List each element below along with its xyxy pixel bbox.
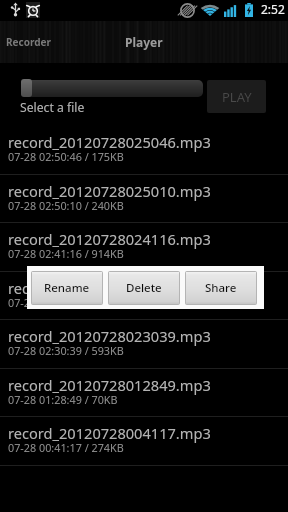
staticText: 2:52 [261,1,285,17]
staticText: 07-28 02:50:46 / 175KB [8,149,124,164]
staticText: Select a file [20,99,85,116]
button[interactable]: Player [84,21,204,63]
button[interactable]: Recorder [0,21,57,63]
staticText: record_20120728004117.mp3 [8,423,211,443]
button[interactable]: record_20120728004117.mp3 [0,417,288,466]
button[interactable]: Seek [21,79,32,97]
button[interactable]: record_20120728012849.mp3 [0,369,288,418]
staticText: 07-28 02:41:16 / 914KB [8,246,124,261]
button[interactable]: record_20120728023905.mp3 [0,272,288,321]
staticText: record_20120728025046.mp3 [8,132,211,152]
staticText: record_20120728024116.mp3 [8,229,211,249]
staticText: 07-28 00:41:17 / 274KB [8,440,124,455]
button[interactable]: Share [186,272,256,304]
button[interactable]: PLAY [207,80,266,113]
button[interactable]: Rename [32,272,102,304]
staticText: Recorder [6,35,51,49]
staticText: Delete [126,280,162,296]
staticText: record_20120728025010.mp3 [8,181,211,201]
button[interactable]: record_20120728025046.mp3 [0,126,288,175]
staticText: 07-28 02:50:10 / 240KB [8,198,124,213]
staticText: record_20120728012849.mp3 [8,375,211,395]
staticText: record_20120728023905.mp3 [8,278,211,298]
staticText: 07-28 02:30:39 / 593KB [8,343,124,358]
button[interactable]: record_20120728024116.mp3 [0,223,288,272]
button[interactable]: record_20120728025010.mp3 [0,175,288,224]
staticText: PLAY [222,88,252,106]
button[interactable]: Delete [109,272,179,304]
staticText: Player [125,34,163,50]
staticText: 07-28 02:39:05 / 120KB [8,295,124,310]
staticText: Share [205,280,237,296]
staticText: record_20120728023039.mp3 [8,326,211,346]
button[interactable]: record_20120728023039.mp3 [0,320,288,369]
staticText: 07-28 01:28:49 / 70KB [8,392,118,407]
staticText: Rename [44,280,90,296]
